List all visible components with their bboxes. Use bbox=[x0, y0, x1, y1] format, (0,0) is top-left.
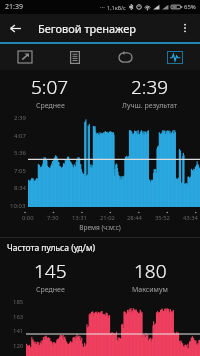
staticText: Время (ч:м:с) bbox=[0, 223, 200, 232]
staticText: 7:30 bbox=[47, 214, 59, 222]
staticText: 35:52 bbox=[155, 214, 170, 222]
staticText: 7:05 bbox=[14, 167, 26, 175]
button[interactable]: Карта bbox=[0, 44, 50, 70]
staticText: Максимум bbox=[132, 285, 168, 295]
staticText: 4:07 bbox=[14, 132, 26, 140]
staticText: 180 bbox=[134, 258, 167, 284]
staticText: Частота пульса (уд/м) bbox=[7, 242, 96, 254]
staticText: 145 bbox=[34, 258, 67, 284]
staticText: 0:00 bbox=[22, 214, 34, 222]
staticText: 141 bbox=[13, 327, 24, 335]
staticText: 65% bbox=[184, 3, 196, 11]
staticText: 28:44 bbox=[127, 214, 142, 222]
staticText: 2:39 bbox=[14, 114, 26, 122]
staticText: Среднее bbox=[36, 285, 65, 295]
staticText: 185 bbox=[13, 298, 24, 306]
staticText: 21:39 bbox=[5, 2, 23, 12]
button[interactable]: Круги bbox=[100, 44, 150, 70]
staticText: Беговой тренажер bbox=[38, 21, 136, 36]
staticText: 8:34 bbox=[14, 184, 26, 192]
button[interactable]: Ещё bbox=[174, 17, 196, 39]
staticText: 13:31 bbox=[72, 214, 87, 222]
button[interactable]: Детали bbox=[50, 44, 100, 70]
staticText: 1,1кБ/с bbox=[107, 4, 126, 11]
staticText: 43:34 bbox=[183, 214, 198, 222]
staticText: 21:02 bbox=[100, 214, 115, 222]
staticText: 163 bbox=[13, 313, 24, 321]
staticText: Среднее bbox=[36, 101, 65, 111]
button[interactable]: Назад bbox=[4, 17, 26, 39]
staticText: ··· bbox=[100, 3, 105, 11]
staticText: 5:36 bbox=[14, 149, 26, 157]
staticText: 10:03 bbox=[10, 202, 26, 210]
staticText: 2:39 bbox=[131, 74, 169, 100]
staticText: Лучш. результат bbox=[122, 101, 178, 111]
staticText: 5:07 bbox=[31, 74, 69, 100]
button[interactable]: Графики bbox=[150, 44, 200, 70]
staticText: 120 bbox=[13, 342, 24, 350]
